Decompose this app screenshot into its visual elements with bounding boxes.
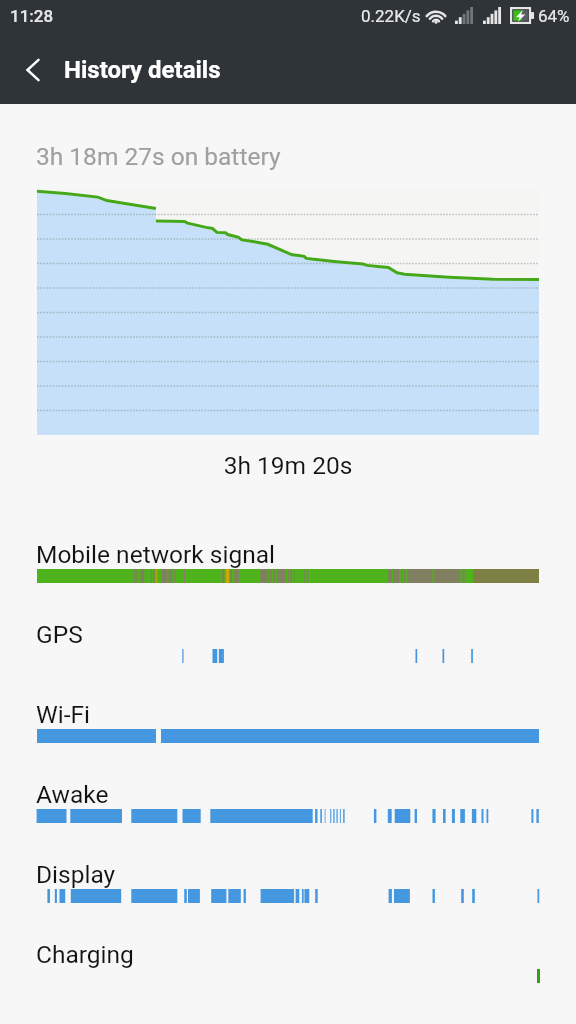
button[interactable]: Wi-Fi: [0, 685, 576, 765]
staticText: 64%: [538, 6, 570, 26]
staticText: Mobile network signal: [36, 540, 275, 569]
staticText: 3h 19m 20s: [0, 451, 576, 480]
button[interactable]: Back: [9, 46, 57, 94]
button[interactable]: Display: [0, 845, 576, 925]
button[interactable]: GPS: [0, 605, 576, 685]
staticText: History details: [64, 56, 221, 84]
staticText: 3h 18m 27s on battery: [36, 142, 281, 171]
button[interactable]: Mobile network signal: [0, 525, 576, 605]
button[interactable]: Charging: [0, 925, 576, 1005]
staticText: Charging: [36, 940, 134, 969]
staticText: 11:28: [10, 6, 54, 26]
staticText: 0.22K/s: [361, 6, 421, 26]
staticText: GPS: [36, 620, 83, 649]
button[interactable]: Awake: [0, 765, 576, 845]
staticText: Awake: [36, 780, 109, 809]
staticText: Wi-Fi: [36, 700, 90, 729]
staticText: Display: [36, 860, 116, 889]
